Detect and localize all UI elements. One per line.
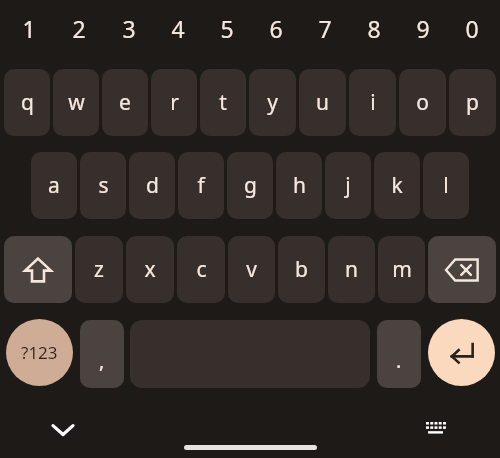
staticText: 7 (318, 13, 332, 44)
button[interactable]: ?123 (6, 319, 73, 386)
staticText: s (98, 171, 109, 200)
staticText: 8 (367, 13, 381, 44)
staticText: j (345, 171, 351, 200)
button[interactable]: Hide keyboard (43, 409, 83, 449)
button[interactable]: f (178, 152, 224, 219)
button[interactable]: q (4, 69, 50, 136)
staticText: r (170, 88, 179, 117)
button[interactable]: t (200, 69, 246, 136)
button[interactable]: Enter (428, 319, 495, 386)
staticText: u (316, 88, 329, 117)
staticText: 3 (122, 13, 136, 44)
staticText: 6 (269, 13, 283, 44)
staticText: y (267, 88, 278, 117)
staticText: v (246, 255, 257, 284)
button[interactable]: g (227, 152, 273, 219)
button[interactable]: , (80, 320, 124, 388)
staticText: 4 (171, 13, 185, 44)
staticText: w (68, 88, 85, 117)
button[interactable]: i (349, 69, 396, 136)
staticText: c (196, 255, 207, 284)
button[interactable]: m (378, 236, 425, 303)
button[interactable]: 7 (300, 0, 349, 56)
button[interactable]: o (399, 69, 446, 136)
button[interactable]: Backspace (428, 236, 496, 303)
button[interactable]: 1 (4, 0, 54, 56)
button[interactable]: k (374, 152, 420, 219)
button[interactable]: l (423, 152, 469, 219)
button[interactable]: w (53, 69, 99, 136)
staticText: . (396, 347, 402, 374)
button[interactable]: j (325, 152, 371, 219)
button[interactable]: v (228, 236, 275, 303)
button[interactable]: u (299, 69, 346, 136)
button[interactable]: y (249, 69, 296, 136)
button[interactable]: c (177, 236, 225, 303)
staticText: n (345, 255, 358, 284)
staticText: q (21, 88, 34, 117)
button[interactable]: 2 (54, 0, 104, 56)
button[interactable]: Shift (4, 236, 72, 303)
staticText: b (295, 255, 308, 284)
button[interactable]: x (126, 236, 174, 303)
staticText: 1 (22, 13, 36, 44)
button[interactable]: 6 (251, 0, 300, 56)
staticText: g (244, 171, 257, 200)
button[interactable]: e (102, 69, 148, 136)
staticText: k (391, 171, 403, 200)
staticText: 9 (416, 13, 430, 44)
button[interactable]: . (377, 320, 421, 388)
staticText: l (443, 171, 449, 200)
button[interactable]: s (80, 152, 126, 219)
staticText: a (48, 171, 60, 200)
staticText: ?123 (21, 341, 58, 364)
staticText: , (99, 347, 105, 374)
button[interactable]: 8 (349, 0, 398, 56)
button[interactable]: n (328, 236, 375, 303)
staticText: z (94, 255, 104, 284)
button[interactable]: b (278, 236, 325, 303)
button[interactable]: a (31, 152, 77, 219)
staticText: 5 (220, 13, 234, 44)
button[interactable]: z (75, 236, 123, 303)
button[interactable]: 0 (447, 0, 496, 56)
staticText: p (466, 88, 479, 117)
staticText: m (392, 255, 412, 284)
button[interactable]: p (449, 69, 496, 136)
staticText: i (370, 88, 376, 117)
staticText: f (197, 171, 205, 200)
button[interactable]: Change keyboard (417, 409, 457, 449)
button[interactable]: 4 (153, 0, 202, 56)
staticText: d (146, 171, 159, 200)
staticText: o (416, 88, 429, 117)
button[interactable]: d (129, 152, 175, 219)
staticText: x (144, 255, 156, 284)
button[interactable]: r (151, 69, 197, 136)
button[interactable]: 5 (202, 0, 251, 56)
staticText: t (219, 88, 227, 117)
button[interactable]: 9 (398, 0, 447, 56)
staticText: 0 (465, 13, 479, 44)
button[interactable]: h (276, 152, 322, 219)
staticText: e (119, 88, 131, 117)
button[interactable]: 3 (104, 0, 153, 56)
staticText: 2 (72, 13, 86, 44)
staticText: h (293, 171, 306, 200)
